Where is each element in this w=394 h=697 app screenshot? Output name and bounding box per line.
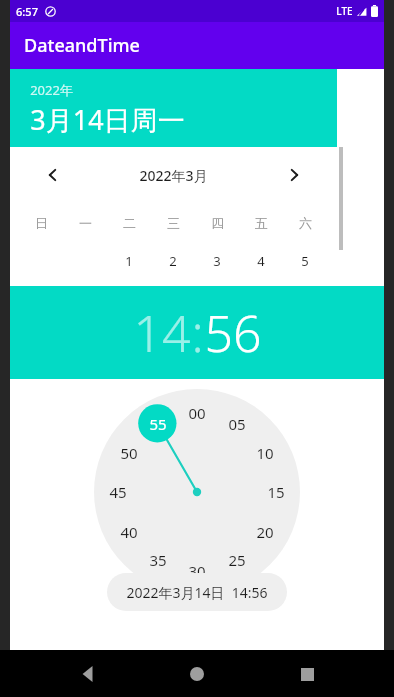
button[interactable]: Recent apps	[285, 652, 329, 696]
staticText: 40	[120, 522, 138, 542]
staticText: 2022年	[30, 81, 73, 99]
staticText: 50	[120, 443, 138, 463]
staticText: 日	[35, 215, 48, 231]
staticText: 35	[149, 550, 167, 570]
staticText: 四	[211, 215, 224, 231]
staticText: 3	[213, 252, 221, 270]
staticText: 三	[167, 215, 180, 231]
staticText: 05	[228, 414, 246, 434]
staticText: DateandTime	[24, 33, 140, 58]
button[interactable]: Minute picker	[94, 389, 300, 595]
staticText: 30	[188, 561, 206, 581]
staticText: 45	[109, 482, 127, 502]
staticText: 4	[257, 252, 265, 270]
staticText: LTE	[336, 4, 353, 18]
button[interactable]: 1	[107, 243, 151, 279]
button[interactable]: 2	[151, 243, 195, 279]
staticText: 1	[125, 252, 133, 270]
staticText: 20	[256, 522, 274, 542]
staticText: :	[191, 299, 204, 367]
staticText: 3月14日周一	[30, 101, 185, 138]
staticText: 六	[299, 215, 312, 231]
button[interactable]: Next month	[281, 162, 307, 188]
button[interactable]: 4	[239, 243, 283, 279]
button[interactable]: 2022年3月14日 14:56	[107, 573, 287, 611]
staticText: 10	[256, 443, 274, 463]
button[interactable]: Previous month	[40, 162, 66, 188]
staticText: 56	[204, 299, 262, 367]
staticText: 55	[149, 414, 167, 434]
staticText: 25	[228, 550, 246, 570]
button[interactable]: 5	[283, 243, 327, 279]
button[interactable]: Back	[66, 652, 110, 696]
staticText: 五	[255, 215, 268, 231]
button[interactable]: 14	[10, 286, 384, 379]
staticText: 2022年3月	[139, 166, 208, 185]
staticText: 6:57	[16, 4, 38, 19]
button[interactable]: Home	[175, 652, 219, 696]
staticText: 二	[123, 215, 136, 231]
staticText: 5	[301, 252, 309, 270]
staticText: 2022年3月14日 14:56	[126, 583, 268, 602]
staticText: 一	[79, 215, 92, 231]
staticText: 2	[169, 252, 177, 270]
staticText: 00	[188, 403, 206, 423]
button[interactable]: 3	[195, 243, 239, 279]
button[interactable]: 2022年	[10, 69, 337, 147]
staticText: 15	[267, 482, 285, 502]
staticText: 14	[133, 299, 191, 367]
